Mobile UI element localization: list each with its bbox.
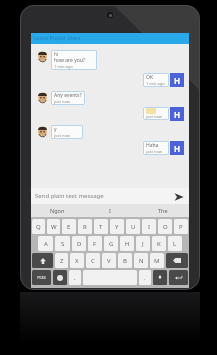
staticText: M xyxy=(154,257,160,265)
button[interactable]: U xyxy=(126,219,140,234)
staticText: Z xyxy=(60,257,64,265)
staticText: Y xyxy=(115,223,119,231)
staticText: Send plain text message xyxy=(35,192,104,200)
button[interactable]: L xyxy=(168,236,182,251)
button[interactable]: Y xyxy=(110,219,124,234)
staticText: , xyxy=(74,274,76,282)
button[interactable]: O xyxy=(158,219,172,234)
staticText: just now xyxy=(146,114,162,119)
button[interactable]: S xyxy=(55,236,70,251)
button[interactable]: Emoji xyxy=(53,270,67,285)
button[interactable]: Send xyxy=(172,190,185,203)
staticText: J xyxy=(142,240,144,248)
staticText: Haha xyxy=(146,142,159,149)
staticText: The xyxy=(158,207,168,214)
button[interactable]: Ngon xyxy=(31,204,83,217)
button[interactable]: Z xyxy=(55,253,68,268)
button[interactable]: I xyxy=(142,219,156,234)
staticText: D xyxy=(77,240,82,248)
button[interactable]: D xyxy=(72,236,86,251)
button[interactable]: B xyxy=(118,253,132,268)
staticText: just now xyxy=(54,133,70,138)
button[interactable]: Send plain text message xyxy=(35,192,172,200)
button[interactable]: , xyxy=(69,270,81,285)
button[interactable]: Shift xyxy=(32,253,53,268)
staticText: A xyxy=(44,240,48,248)
staticText: K xyxy=(157,240,161,248)
staticText: L xyxy=(173,240,177,248)
button[interactable]: E xyxy=(62,219,76,234)
staticText: just now xyxy=(146,149,162,154)
button[interactable]: Numbers xyxy=(32,270,51,285)
button[interactable]: OK xyxy=(31,73,184,87)
staticText: P xyxy=(179,223,183,231)
staticText: R xyxy=(83,223,87,231)
staticText: U xyxy=(131,223,136,231)
button[interactable]: . xyxy=(139,270,151,285)
button[interactable]: V xyxy=(102,253,116,268)
button[interactable]: y xyxy=(36,125,189,139)
staticText: N xyxy=(139,257,144,265)
staticText: ?123 xyxy=(37,275,46,280)
staticText: F xyxy=(93,240,97,248)
staticText: hi xyxy=(54,51,58,57)
button[interactable]: just now xyxy=(31,107,184,121)
button[interactable]: P xyxy=(174,219,188,234)
staticText: just now xyxy=(54,99,70,104)
button[interactable]: I xyxy=(83,204,136,217)
button[interactable]: T xyxy=(94,219,108,234)
staticText: 1 min ago xyxy=(146,81,165,86)
staticText: I xyxy=(148,223,151,231)
staticText: E xyxy=(67,223,71,231)
button[interactable]: Voice input xyxy=(153,270,167,285)
button[interactable]: The xyxy=(136,204,189,217)
button[interactable]: Latest Project Users xyxy=(31,33,189,44)
button[interactable]: hi xyxy=(36,50,189,70)
staticText: Ngon xyxy=(50,207,65,214)
button[interactable]: A xyxy=(38,236,53,251)
button[interactable]: N xyxy=(134,253,148,268)
staticText: Q xyxy=(36,223,41,231)
staticText: 1 min ago xyxy=(54,64,73,69)
button[interactable]: J xyxy=(136,236,150,251)
button[interactable]: H xyxy=(120,236,134,251)
button[interactable]: F xyxy=(88,236,102,251)
staticText: G xyxy=(109,240,114,248)
staticText: OK xyxy=(146,74,154,81)
button[interactable]: Enter xyxy=(169,270,188,285)
button[interactable]: Backspace xyxy=(166,253,188,268)
button[interactable]: K xyxy=(152,236,166,251)
staticText: V xyxy=(107,257,111,265)
staticText: O xyxy=(163,223,168,231)
button[interactable]: C xyxy=(86,253,100,268)
staticText: Latest Project Users xyxy=(34,35,81,42)
staticText: T xyxy=(99,223,103,231)
button[interactable]: Haha xyxy=(31,141,184,155)
staticText: H xyxy=(174,143,181,154)
staticText: H xyxy=(174,109,181,120)
button[interactable]: X xyxy=(70,253,84,268)
button[interactable]: W xyxy=(47,219,60,234)
button[interactable]: Any events? xyxy=(36,91,189,105)
staticText: X xyxy=(75,257,79,265)
staticText: I xyxy=(109,207,111,214)
staticText: C xyxy=(91,257,95,265)
staticText: H xyxy=(125,240,130,248)
button[interactable]: M xyxy=(150,253,164,268)
staticText: how are you? xyxy=(54,57,85,64)
button[interactable]: R xyxy=(78,219,92,234)
staticText: Any events? xyxy=(54,92,82,99)
staticText: B xyxy=(123,257,127,265)
staticText: W xyxy=(51,223,57,231)
button[interactable]: Q xyxy=(32,219,45,234)
staticText: . xyxy=(144,274,146,282)
staticText: S xyxy=(61,240,65,248)
staticText: H xyxy=(174,75,181,86)
staticText: y xyxy=(54,126,57,133)
button[interactable]: G xyxy=(104,236,118,251)
